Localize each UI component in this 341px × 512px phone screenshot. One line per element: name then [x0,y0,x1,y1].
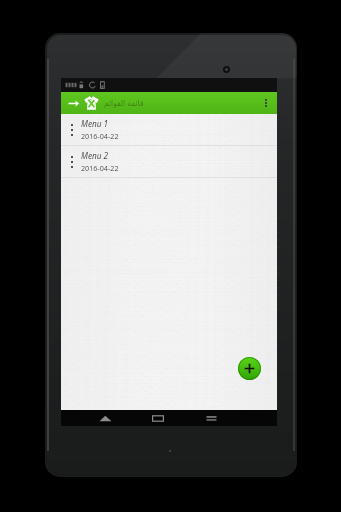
staticText: Menu 2 [81,150,109,161]
button[interactable]: Back [65,93,81,113]
staticText: Menu 1 [81,118,109,129]
button[interactable]: Back [94,410,116,426]
button[interactable]: Home [147,410,169,426]
other: Reorder [66,116,78,144]
button[interactable]: Recent apps [200,410,222,426]
button[interactable]: Add menu [238,357,261,380]
button[interactable]: More options [258,93,274,113]
other: Reorder [66,148,78,176]
staticText: 2016-04-22 [81,131,119,141]
staticText: قائمة القوائم [104,98,144,108]
button[interactable]: Reorder [61,114,277,145]
button[interactable]: Reorder [61,146,277,177]
staticText: 2016-04-22 [81,163,119,173]
